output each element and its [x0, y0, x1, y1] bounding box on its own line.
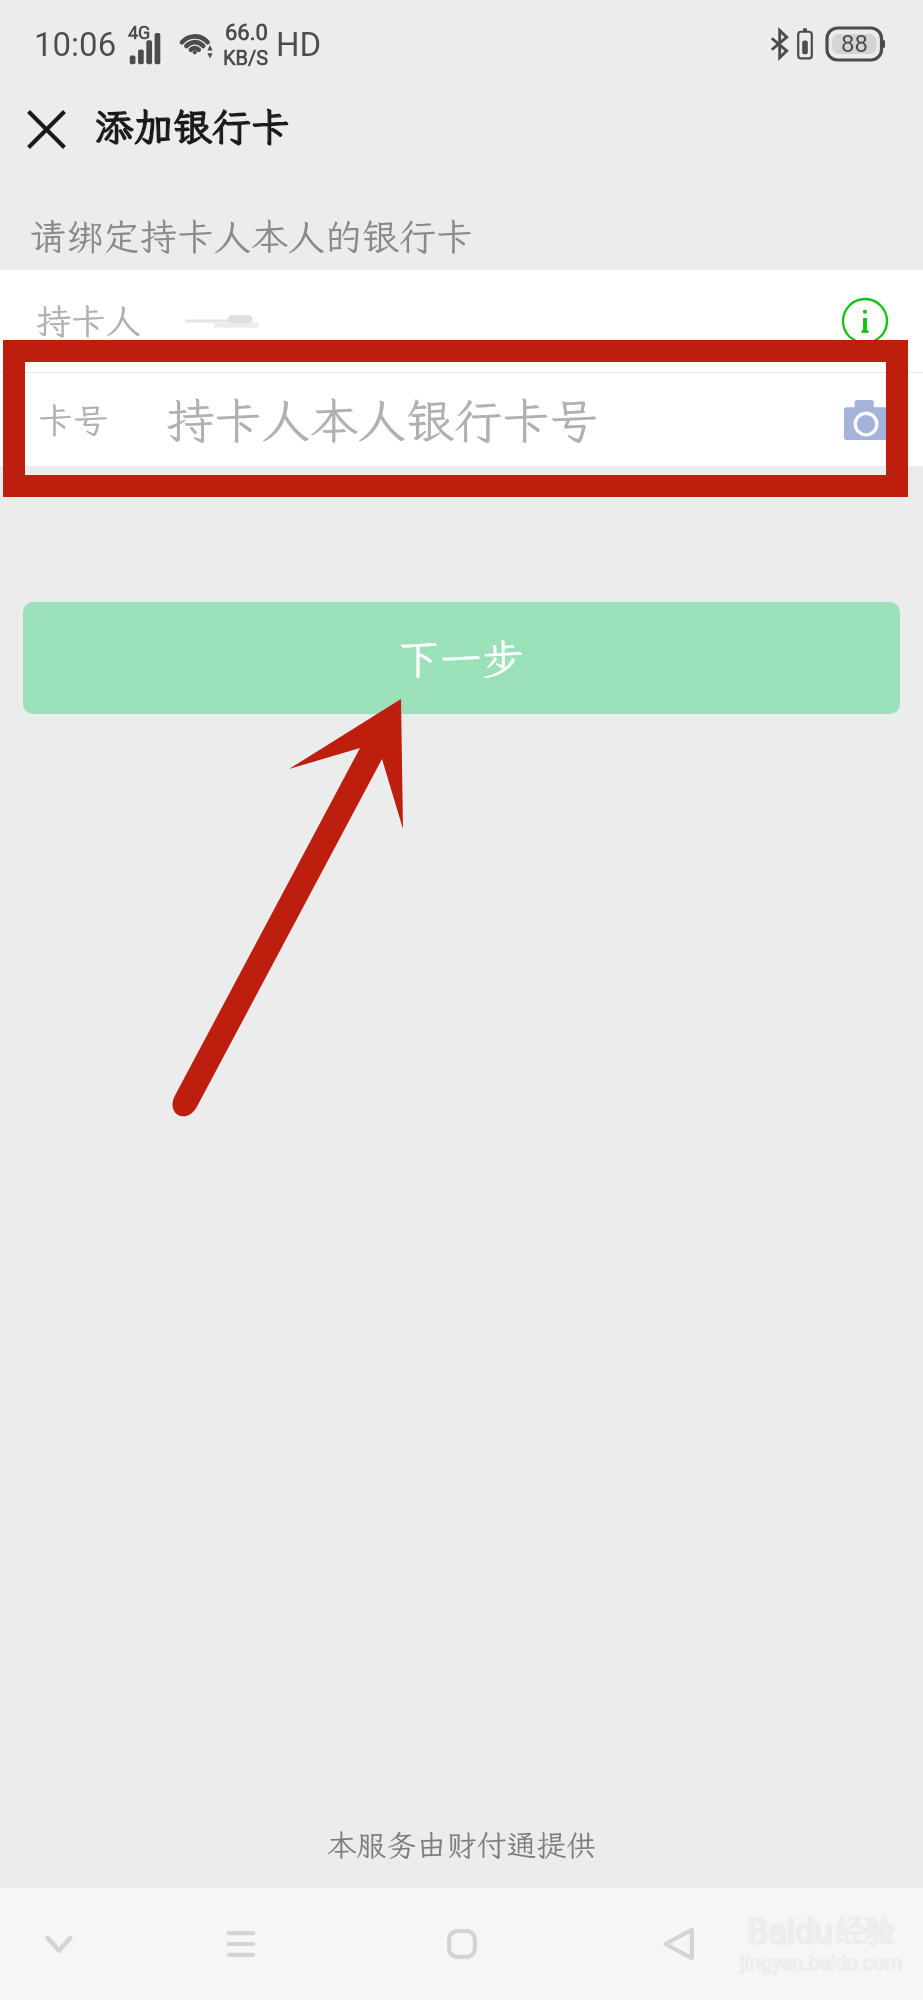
staticText: 卡号 [38, 397, 109, 443]
staticText: KB/S [223, 46, 269, 69]
staticText: 持卡人本人银行卡号 [166, 388, 599, 451]
button[interactable]: Scan card number [841, 393, 895, 447]
button[interactable]: Close [15, 98, 77, 160]
staticText: Baidu [747, 1911, 833, 1951]
staticText: 66.0 [225, 20, 268, 46]
button[interactable]: 持卡人 [0, 270, 923, 372]
staticText: 持卡人 [36, 298, 142, 344]
button[interactable]: 下一步 [23, 602, 900, 714]
button[interactable]: 卡号 [0, 373, 923, 466]
staticText: HD [276, 25, 322, 64]
button[interactable]: Hide keyboard [3, 1888, 115, 2000]
staticText: 添加银行卡 [95, 101, 291, 152]
staticText: 请绑定持卡人本人的银行卡 [29, 212, 473, 261]
button[interactable]: Menu [185, 1888, 297, 2000]
staticText: jingyan.baidu.com [740, 1951, 903, 1974]
staticText: 4G [128, 22, 151, 43]
staticText: 下一步 [398, 631, 525, 686]
staticText: 10:06 [34, 25, 117, 64]
staticText: 88 [841, 30, 868, 58]
staticText: 添加银行卡 [95, 101, 291, 152]
button[interactable]: Home [406, 1888, 518, 2000]
button[interactable]: Information [836, 292, 894, 350]
staticText: 经验 [836, 1912, 896, 1950]
staticText: 本服务由财付通提供 [0, 1825, 923, 1865]
button[interactable]: Back [624, 1888, 736, 2000]
